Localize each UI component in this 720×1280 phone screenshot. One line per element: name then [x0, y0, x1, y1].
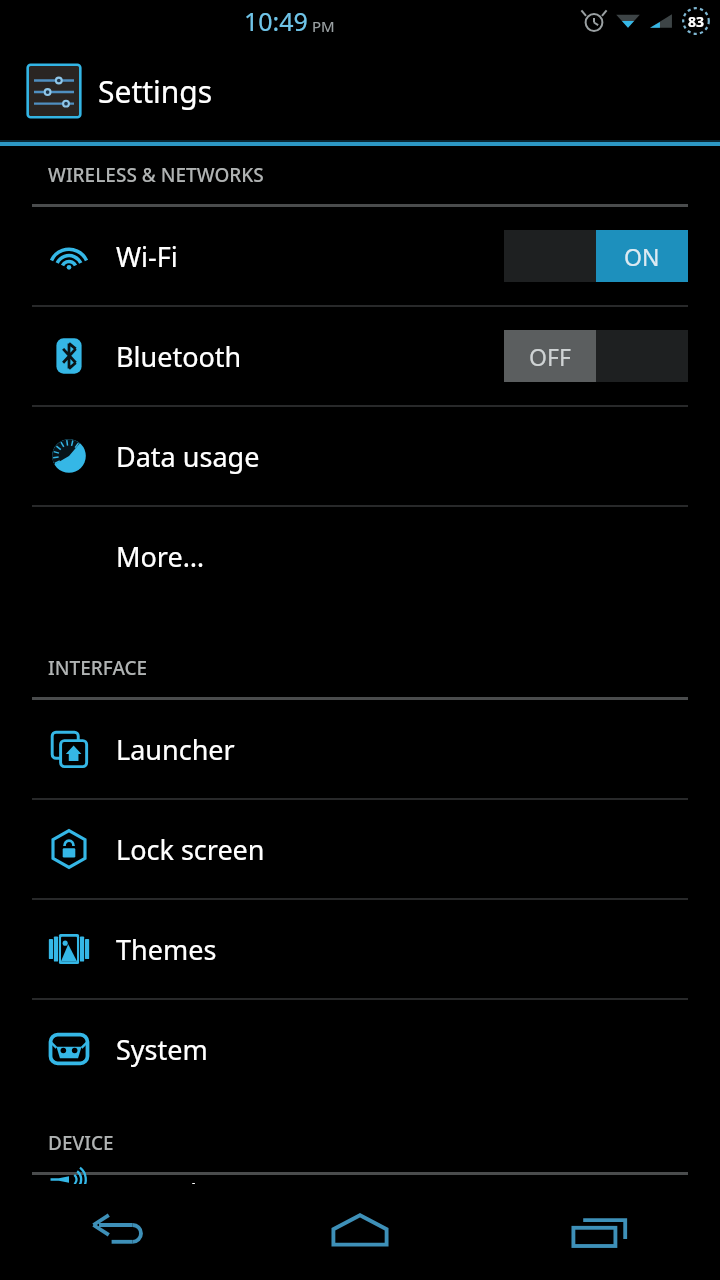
button[interactable]: Sound [0, 1175, 720, 1184]
staticText: PM [312, 16, 335, 36]
staticText: 83 [688, 12, 705, 31]
staticText: Settings [98, 71, 213, 112]
staticText: Bluetooth [116, 338, 242, 375]
staticText: Wi-Fi [116, 238, 178, 275]
staticText: 10:49 [244, 4, 308, 38]
button[interactable]: Launcher [0, 700, 720, 798]
staticText: System [116, 1031, 208, 1068]
button[interactable]: Lock screen [0, 800, 720, 898]
staticText: DEVICE [48, 1130, 114, 1156]
staticText: ON [624, 241, 660, 272]
button[interactable]: Home [240, 1184, 480, 1280]
staticText: OFF [529, 341, 571, 372]
button[interactable]: OFF [504, 330, 688, 382]
staticText: Lock screen [116, 831, 265, 868]
button[interactable]: System [0, 1000, 720, 1098]
staticText: Data usage [116, 438, 260, 475]
staticText: More… [116, 538, 205, 575]
button[interactable]: Wi-Fi [0, 207, 720, 305]
button[interactable]: Data usage [0, 407, 720, 505]
button[interactable]: Recent apps [480, 1184, 720, 1280]
button[interactable]: Back [0, 1184, 240, 1280]
staticText: Sound [116, 1175, 198, 1184]
button[interactable]: Themes [0, 900, 720, 998]
button[interactable]: ON [504, 230, 688, 282]
button[interactable]: More… [0, 507, 720, 605]
staticText: Launcher [116, 731, 235, 768]
staticText: INTERFACE [48, 655, 148, 681]
button[interactable]: Bluetooth [0, 307, 720, 405]
staticText: Themes [116, 931, 217, 968]
staticText: WIRELESS & NETWORKS [48, 162, 264, 188]
